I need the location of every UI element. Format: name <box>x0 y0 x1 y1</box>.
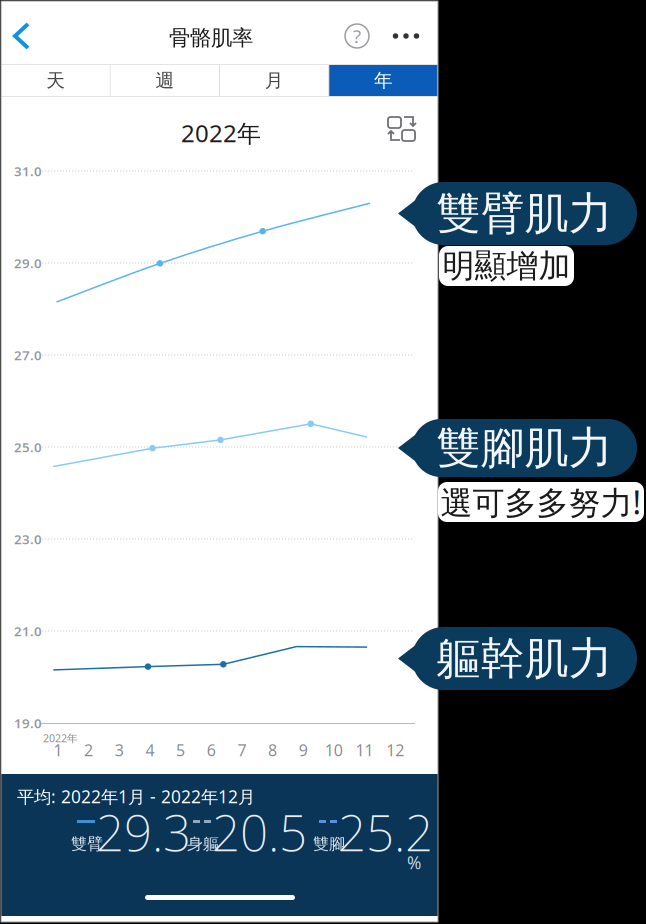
staticText: 2022年 <box>43 731 78 745</box>
staticText: 23.0 <box>14 530 42 548</box>
staticText: 雙臂肌力 <box>436 186 612 240</box>
button[interactable]: 月 <box>220 64 328 97</box>
staticText: 19.0 <box>14 714 42 732</box>
staticText: 骨骼肌率 <box>169 25 253 51</box>
button[interactable]: 天 <box>1 64 110 97</box>
staticText: 12 <box>386 739 404 761</box>
staticText: 21.0 <box>14 622 42 640</box>
staticText: 1 <box>53 739 62 761</box>
button[interactable]: Back <box>0 5 43 67</box>
staticText: 10 <box>325 739 343 761</box>
staticText: 6 <box>207 739 216 761</box>
staticText: 平均: 2022年1月 - 2022年12月 <box>17 785 255 808</box>
staticText: 31.0 <box>14 162 42 180</box>
staticText: ? <box>353 24 361 48</box>
staticText: 8 <box>268 739 277 761</box>
staticText: 5 <box>176 739 185 761</box>
staticText: 軀幹肌力 <box>436 631 612 685</box>
button[interactable]: Help <box>335 10 379 62</box>
staticText: 2 <box>84 739 93 761</box>
staticText: 25.2 <box>338 799 433 865</box>
button[interactable]: More <box>382 10 430 62</box>
staticText: % <box>407 851 421 874</box>
staticText: 3 <box>115 739 124 761</box>
staticText: 27.0 <box>14 346 42 364</box>
staticText: 2022年 <box>181 117 261 149</box>
staticText: 年 <box>374 69 393 92</box>
button[interactable]: 週 <box>111 64 219 97</box>
staticText: 11 <box>355 739 373 761</box>
staticText: 雙腳肌力 <box>436 421 612 475</box>
staticText: 29.0 <box>14 254 42 272</box>
staticText: 25.0 <box>14 438 42 456</box>
staticText: 選可多多努力! <box>440 481 641 523</box>
staticText: 週 <box>155 69 174 92</box>
staticText: 雙腳 <box>313 834 345 854</box>
button[interactable]: Compare <box>388 115 418 145</box>
staticText: 雙臂 <box>71 834 103 854</box>
staticText: 明顯增加 <box>442 246 570 286</box>
button[interactable]: 年 <box>329 64 437 97</box>
staticText: 天 <box>46 69 65 92</box>
staticText: 7 <box>237 739 246 761</box>
staticText: 9 <box>299 739 308 761</box>
staticText: 月 <box>265 69 284 92</box>
staticText: 29.3 <box>96 799 191 865</box>
staticText: 身軀 <box>187 834 219 854</box>
staticText: 4 <box>145 739 154 761</box>
staticText: 20.5 <box>212 799 307 865</box>
